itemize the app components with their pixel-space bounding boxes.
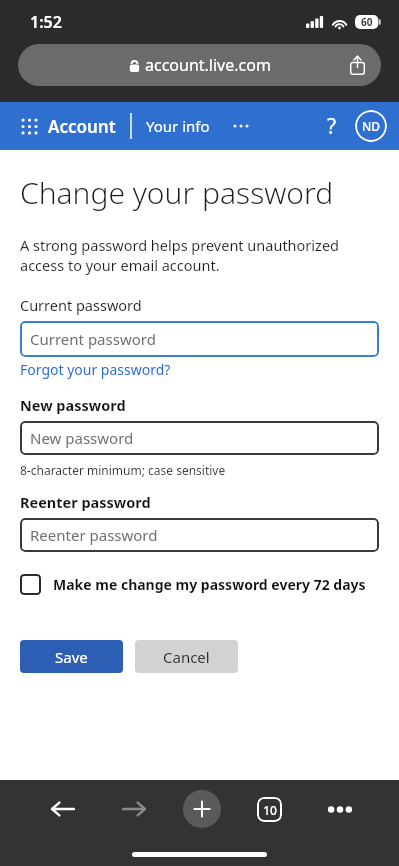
staticText: Account	[48, 115, 116, 138]
staticText: Save	[55, 647, 88, 667]
button[interactable]: Help	[315, 109, 349, 143]
button[interactable]: More	[228, 113, 254, 139]
button[interactable]: App launcher	[14, 111, 44, 141]
staticText: Current password	[20, 295, 142, 315]
button[interactable]: Back	[41, 787, 85, 831]
staticText: ND	[362, 118, 381, 134]
staticText: New password	[20, 395, 126, 415]
staticText: 60	[361, 15, 373, 29]
staticText: Change your password	[20, 172, 334, 213]
button[interactable]: Account profile	[355, 110, 387, 142]
button[interactable]: Cancel	[135, 640, 238, 673]
staticText: Reenter password	[20, 492, 151, 512]
staticText: Reenter password	[30, 525, 158, 545]
button[interactable]: Share	[345, 53, 369, 77]
staticText: Current password	[30, 329, 156, 349]
button[interactable]: Current password	[20, 321, 379, 357]
staticText: Your info	[146, 116, 210, 136]
staticText: ?	[327, 112, 337, 141]
button[interactable]: Forgot your password?	[20, 360, 171, 379]
staticText: 8-character minimum; case sensitive	[20, 462, 226, 478]
staticText: A strong password helps prevent unauthor…	[20, 235, 339, 275]
button[interactable]: Tabs, 10 open	[247, 787, 291, 831]
button[interactable]: account.live.com	[18, 44, 381, 86]
button[interactable]: Forward	[112, 787, 156, 831]
button[interactable]: Make me change my password every 72 days	[20, 574, 366, 595]
staticText: New password	[30, 428, 134, 448]
staticText: Cancel	[163, 647, 210, 667]
button[interactable]: Account	[48, 115, 116, 138]
button[interactable]: Save	[20, 640, 123, 673]
staticText: 1:52	[30, 11, 62, 33]
button[interactable]: Reenter password	[20, 518, 379, 552]
button[interactable]: More options	[318, 787, 362, 831]
button[interactable]: New tab	[183, 790, 221, 828]
staticText: Forgot your password?	[20, 360, 171, 379]
button[interactable]: Your info	[146, 116, 210, 136]
staticText: Make me change my password every 72 days	[53, 575, 366, 594]
button[interactable]: New password	[20, 421, 379, 455]
staticText: account.live.com	[145, 54, 271, 76]
staticText: 10	[263, 802, 277, 818]
